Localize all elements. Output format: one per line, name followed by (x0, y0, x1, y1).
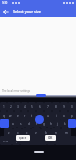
button[interactable] (47, 136, 55, 145)
button[interactable]: OK (45, 135, 56, 141)
button[interactable]: y (36, 111, 44, 120)
button[interactable]: 1 (0, 102, 7, 111)
button[interactable]: j (54, 119, 61, 128)
staticText: 6 (39, 105, 41, 109)
button[interactable]: v (31, 128, 41, 137)
staticText: f (36, 122, 38, 126)
staticText: 9:30 (2, 1, 8, 5)
button[interactable]: b (41, 128, 51, 137)
staticText: h (50, 122, 52, 126)
staticText: i (56, 114, 57, 118)
staticText: g (43, 122, 45, 126)
button[interactable]: 8 (52, 102, 60, 111)
button[interactable]: 5 (28, 102, 36, 111)
staticText: c (26, 131, 28, 135)
staticText: n (55, 131, 57, 135)
button[interactable]: m (61, 128, 71, 137)
staticText: w (9, 114, 12, 118)
staticText: q (3, 114, 5, 118)
staticText: 4 (24, 105, 26, 109)
button[interactable]: p (68, 111, 76, 120)
button[interactable]: Back (0, 6, 11, 17)
button[interactable]: g (40, 119, 47, 128)
button[interactable]: t (28, 111, 36, 120)
button[interactable]: r (21, 111, 28, 120)
staticText: ?123 (3, 139, 9, 142)
staticText: , (16, 139, 17, 143)
button[interactable]: q (0, 111, 7, 120)
staticText: a (12, 122, 14, 126)
button[interactable] (36, 94, 46, 97)
staticText: u (47, 114, 49, 118)
button[interactable]: 2 (7, 102, 14, 111)
button[interactable]: k (61, 119, 68, 128)
button[interactable]: Delete (68, 119, 76, 128)
staticText: OK (48, 136, 53, 140)
button[interactable]: 0 (68, 102, 76, 111)
staticText: p (71, 114, 73, 118)
button[interactable]: 3 (14, 102, 21, 111)
staticText: 7 (47, 105, 49, 109)
button[interactable]: h (47, 119, 54, 128)
staticText: 0 (71, 105, 73, 109)
staticText: x (17, 131, 19, 135)
staticText: 2 (10, 105, 12, 109)
button[interactable]: 6 (36, 102, 44, 111)
button[interactable]: e (14, 111, 21, 120)
button[interactable]: d (25, 119, 33, 128)
button[interactable]: , (12, 136, 20, 145)
button[interactable]: 9 (60, 102, 68, 111)
staticText: z (8, 131, 10, 135)
button[interactable]: 7 (44, 102, 52, 111)
staticText: space (19, 136, 27, 140)
staticText: j (57, 122, 58, 126)
staticText: s (20, 122, 22, 126)
staticText: 3 (17, 105, 19, 109)
button[interactable]: s (17, 119, 25, 128)
button[interactable] (55, 136, 76, 145)
staticText: t (31, 114, 33, 118)
button[interactable]: n (51, 128, 61, 137)
staticText: v (35, 131, 37, 135)
staticText: o (63, 114, 65, 118)
staticText: Select your size (13, 9, 41, 14)
button[interactable]: c (22, 128, 31, 137)
button[interactable] (20, 136, 47, 145)
button[interactable]: w (7, 111, 14, 120)
staticText: 8 (55, 105, 57, 109)
staticText: 1 (3, 105, 5, 109)
button[interactable]: 4 (21, 102, 28, 111)
staticText: r (24, 114, 26, 118)
staticText: The local error settings (2, 89, 31, 93)
button[interactable]: o (60, 111, 68, 120)
button[interactable]: u (44, 111, 52, 120)
button[interactable]: a (9, 119, 17, 128)
staticText: d (28, 122, 30, 126)
button[interactable]: Space (16, 135, 30, 141)
staticText: k (64, 122, 66, 126)
staticText: y (39, 114, 41, 118)
button[interactable]: x (13, 128, 22, 137)
staticText: m (65, 131, 68, 135)
staticText: b (45, 131, 47, 135)
button[interactable]: z (4, 128, 13, 137)
staticText: 5 (31, 105, 33, 109)
button[interactable]: ?123 (0, 136, 12, 145)
staticText: 9 (63, 105, 65, 109)
staticText: e (17, 114, 19, 118)
button[interactable]: Shift (0, 119, 9, 128)
button[interactable]: i (52, 111, 60, 120)
button[interactable]: f (33, 119, 40, 128)
